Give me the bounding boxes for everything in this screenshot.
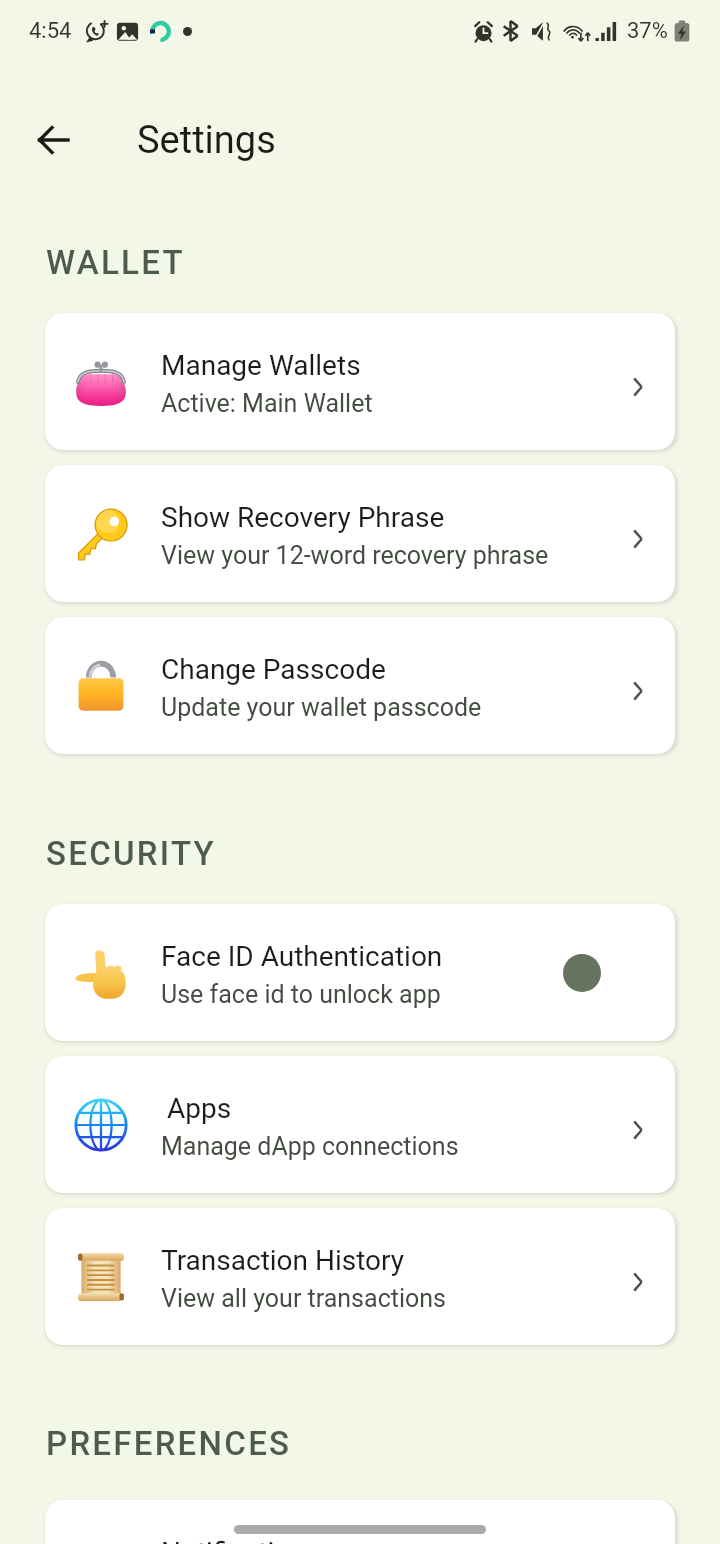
staticText: Active: Main Wallet	[161, 389, 373, 418]
button[interactable]: Change Passcode	[45, 617, 675, 754]
staticText: Show Recovery Phrase	[161, 501, 445, 534]
staticText: Manage dApp connections	[161, 1132, 459, 1161]
staticText: View all your transactions	[161, 1284, 446, 1313]
staticText: Change Passcode	[161, 653, 386, 686]
staticText: 37%	[627, 18, 668, 44]
button[interactable]: Transaction History	[45, 1208, 675, 1345]
staticText: Update your wallet passcode	[161, 693, 482, 722]
staticText: Manage Wallets	[161, 349, 361, 382]
staticText: WALLET	[46, 243, 185, 282]
staticText: Notifications	[161, 1536, 321, 1544]
staticText: Use face id to unlock app	[161, 980, 441, 1009]
staticText: 4:54	[29, 18, 72, 44]
button[interactable]: Face ID Authentication	[45, 904, 675, 1041]
button[interactable]: Apps	[45, 1056, 675, 1193]
button[interactable]: Manage Wallets	[45, 313, 675, 450]
staticText: View your 12-word recovery phrase	[161, 541, 549, 570]
staticText: SECURITY	[46, 834, 216, 873]
staticText: PREFERENCES	[46, 1424, 292, 1463]
button[interactable]: Notifications	[45, 1500, 675, 1544]
button[interactable]: Show Recovery Phrase	[45, 465, 675, 602]
staticText: Settings	[137, 118, 276, 163]
staticText: Transaction History	[161, 1244, 405, 1277]
staticText: Apps	[167, 1092, 232, 1125]
button[interactable]: Back	[25, 112, 81, 168]
button[interactable]: Face ID toggle	[563, 954, 601, 992]
staticText: Face ID Authentication	[161, 940, 443, 973]
